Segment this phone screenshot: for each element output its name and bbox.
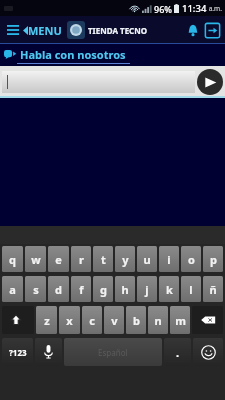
staticText: m	[175, 313, 186, 328]
button[interactable]: t	[93, 246, 113, 272]
button[interactable]: a	[2, 276, 23, 302]
button[interactable]: y	[115, 246, 135, 272]
staticText: g	[100, 282, 107, 297]
staticText: TIENDA TECNO	[88, 25, 148, 36]
button[interactable]: d	[48, 276, 69, 302]
button[interactable]: Open menu	[4, 21, 22, 39]
staticText: 11:34	[182, 2, 207, 15]
staticText: i	[167, 252, 171, 267]
button[interactable]	[2, 71, 195, 93]
button[interactable]: u	[137, 246, 157, 272]
button[interactable]: Symbols	[2, 338, 33, 366]
button[interactable]: Emoji	[193, 338, 223, 366]
staticText: k	[166, 282, 173, 297]
button[interactable]: m	[170, 306, 190, 334]
staticText: Habla con nosotros	[20, 47, 126, 62]
staticText: z	[44, 313, 50, 328]
staticText: t	[101, 252, 106, 267]
button[interactable]: e	[48, 246, 69, 272]
staticText: d	[55, 282, 62, 297]
button[interactable]: b	[126, 306, 146, 334]
button[interactable]: q	[2, 246, 23, 272]
button[interactable]: ñ	[203, 276, 223, 302]
staticText: l	[189, 282, 193, 297]
button[interactable]: Backspace	[192, 306, 223, 334]
staticText: o	[188, 252, 195, 267]
staticText: .	[176, 345, 180, 360]
button[interactable]: j	[137, 276, 157, 302]
staticText: x	[66, 313, 73, 328]
button[interactable]: f	[71, 276, 91, 302]
staticText: n	[154, 313, 162, 328]
staticText: b	[133, 313, 140, 328]
staticText: p	[210, 252, 217, 267]
staticText: 96%	[154, 3, 172, 15]
button[interactable]: z	[36, 306, 57, 334]
button[interactable]: k	[159, 276, 179, 302]
button[interactable]: Send message	[197, 69, 223, 95]
button[interactable]: x	[59, 306, 80, 334]
staticText: ñ	[209, 282, 217, 297]
staticText: w	[31, 252, 41, 267]
button[interactable]: o	[181, 246, 201, 272]
staticText: s	[33, 282, 39, 297]
button[interactable]: Shift	[2, 306, 34, 334]
staticText: c	[89, 313, 95, 328]
button[interactable]: r	[71, 246, 91, 272]
button[interactable]: MENU	[22, 23, 63, 38]
staticText: q	[9, 252, 16, 267]
staticText: y	[122, 252, 129, 267]
staticText: u	[143, 252, 151, 267]
staticText: e	[55, 252, 62, 267]
button[interactable]: h	[115, 276, 135, 302]
button[interactable]: v	[104, 306, 124, 334]
staticText: h	[121, 282, 129, 297]
button[interactable]: s	[25, 276, 46, 302]
button[interactable]: Español	[64, 338, 162, 366]
button[interactable]: Notifications	[182, 19, 204, 41]
button[interactable]: c	[82, 306, 102, 334]
button[interactable]: g	[93, 276, 113, 302]
staticText: Español	[98, 347, 128, 358]
staticText: a	[9, 282, 16, 297]
staticText: a.m.	[207, 4, 222, 13]
button[interactable]: Tienda Tecno logo	[67, 21, 85, 39]
button[interactable]: n	[148, 306, 168, 334]
button[interactable]: w	[25, 246, 46, 272]
button[interactable]: p	[203, 246, 223, 272]
button[interactable]: Period	[164, 338, 191, 366]
staticText: f	[79, 282, 84, 297]
button[interactable]: i	[159, 246, 179, 272]
button[interactable]: Voice input	[35, 338, 62, 366]
staticText: r	[79, 252, 84, 267]
staticText: ?123	[9, 347, 27, 358]
staticText: MENU	[28, 23, 62, 38]
staticText: j	[145, 282, 149, 297]
button[interactable]: Log out	[204, 22, 221, 39]
staticText: v	[111, 313, 118, 328]
button[interactable]: l	[181, 276, 201, 302]
